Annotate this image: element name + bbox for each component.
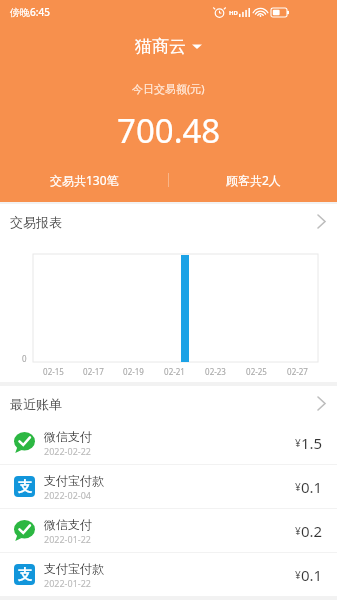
staticText: 支付宝付款	[44, 561, 104, 576]
other: Alipay	[14, 564, 35, 585]
staticText: HD	[229, 9, 238, 17]
staticText: 0.1	[301, 477, 323, 497]
staticText: 02-19	[123, 366, 144, 377]
staticText: 2022-02-04	[44, 489, 91, 501]
staticText: 交易共130笔	[50, 172, 119, 188]
button[interactable]: 交易报表	[0, 204, 337, 239]
staticText: 02-21	[164, 366, 185, 377]
staticText: 今日交易额(元)	[132, 81, 205, 96]
staticText: 2022-01-22	[44, 577, 91, 589]
button[interactable]: WeChat Pay	[0, 509, 337, 552]
staticText: 700.48	[117, 108, 221, 153]
staticText: 1.5	[301, 433, 323, 453]
button[interactable]: 最近账单	[0, 386, 337, 421]
staticText: 猫商云	[135, 36, 186, 57]
button[interactable]: Alipay	[0, 465, 337, 508]
staticText: 支付宝付款	[44, 473, 104, 488]
staticText: ¥	[295, 524, 301, 538]
staticText: 微信支付	[44, 517, 92, 532]
button[interactable]: Alipay	[0, 553, 337, 596]
staticText: 0.1	[301, 565, 323, 585]
staticText: 02-27	[287, 366, 308, 377]
staticText: 最近账单	[10, 396, 62, 412]
staticText: 02-23	[205, 366, 226, 377]
staticText: 02-15	[43, 366, 64, 377]
staticText: 支	[18, 566, 32, 584]
staticText: ¥	[295, 480, 301, 494]
staticText: 顾客共2人	[226, 172, 281, 188]
staticText: 微信支付	[44, 429, 92, 444]
button[interactable]: 猫商云	[129, 34, 208, 59]
other: WeChat Pay	[14, 520, 35, 541]
button[interactable]: WeChat Pay	[0, 421, 337, 464]
staticText: 02-17	[83, 366, 104, 377]
staticText: 02-25	[246, 366, 267, 377]
staticText: ¥	[295, 436, 301, 450]
other: WeChat Pay	[14, 432, 35, 453]
staticText: 支	[18, 478, 32, 496]
staticText: 2022-01-22	[44, 533, 91, 545]
other: Alipay	[14, 476, 35, 497]
staticText: 2022-02-22	[44, 445, 91, 457]
button[interactable]: 交易共130笔	[0, 158, 168, 202]
staticText: 0	[22, 353, 27, 364]
staticText: 傍晚6:45	[10, 5, 50, 19]
staticText: 交易报表	[10, 214, 62, 230]
staticText: 0.2	[301, 521, 323, 541]
staticText: ¥	[295, 568, 301, 582]
button[interactable]: 顾客共2人	[169, 158, 337, 202]
